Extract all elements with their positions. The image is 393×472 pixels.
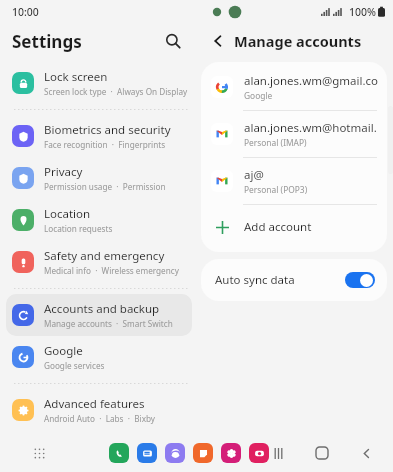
button[interactable]: Search xyxy=(160,28,186,54)
staticText: Manage accounts · Smart Switch xyxy=(44,318,173,329)
staticText: Lock screen xyxy=(44,69,108,85)
staticText: alan.jones.wm@hotmail.com xyxy=(244,120,379,136)
button[interactable]: alan.jones.wm@hotmail.com xyxy=(201,111,387,157)
button[interactable]: Safety and emergency xyxy=(6,241,192,283)
staticText: Screen lock type · Always On Display xyxy=(44,86,188,97)
staticText: Manage accounts xyxy=(234,31,362,51)
staticText: 100% xyxy=(349,5,376,19)
staticText: Add account xyxy=(244,219,312,235)
button[interactable]: notes xyxy=(193,443,213,463)
staticText: Location xyxy=(44,206,91,222)
button[interactable]: Location xyxy=(6,199,192,241)
staticText: Settings xyxy=(12,30,82,53)
staticText: Face recognition · Fingerprints xyxy=(44,139,166,150)
button[interactable]: Apps xyxy=(28,442,50,464)
staticText: Android Auto · Labs · Bixby Routines xyxy=(44,413,188,424)
staticText: Google services xyxy=(44,360,105,371)
button[interactable]: messages xyxy=(137,443,157,463)
staticText: Safety and emergency xyxy=(44,248,165,264)
staticText: Privacy xyxy=(44,164,83,180)
button[interactable]: internet xyxy=(165,443,185,463)
staticText: Permission usage · Permission manager xyxy=(44,181,188,192)
staticText: Personal (POP3) xyxy=(244,184,308,195)
staticText: aj@ xyxy=(244,167,264,183)
button[interactable]: Biometrics and security xyxy=(6,115,192,157)
staticText: Google xyxy=(44,343,83,359)
button[interactable]: Recents xyxy=(267,442,289,464)
button[interactable]: Accounts and backup xyxy=(6,294,192,336)
staticText: Accounts and backup xyxy=(44,301,160,317)
staticText: Location requests xyxy=(44,223,113,234)
staticText: Google xyxy=(244,90,273,101)
button[interactable]: flower xyxy=(221,443,241,463)
button[interactable]: Home xyxy=(311,442,333,464)
staticText: Medical info · Wireless emergency alerts xyxy=(44,265,188,276)
button[interactable]: camera xyxy=(249,443,269,463)
staticText: Auto sync data xyxy=(215,272,345,288)
staticText: Personal (IMAP) xyxy=(244,137,307,148)
button[interactable]: Advanced features xyxy=(6,389,192,431)
staticText: Biometrics and security xyxy=(44,122,171,138)
button[interactable]: Back xyxy=(355,442,377,464)
button[interactable]: alan.jones.wm@gmail.com xyxy=(201,64,387,110)
button[interactable]: phone xyxy=(109,443,129,463)
button[interactable]: aj@ xyxy=(201,158,387,204)
staticText: 10:00 xyxy=(12,5,39,19)
staticText: alan.jones.wm@gmail.com xyxy=(244,73,379,89)
button[interactable]: Auto sync data xyxy=(201,259,387,301)
button[interactable]: Google xyxy=(6,336,192,378)
button[interactable]: Privacy xyxy=(6,157,192,199)
button[interactable]: Add account xyxy=(201,205,387,250)
staticText: Advanced features xyxy=(44,396,145,412)
button[interactable]: Lock screen xyxy=(6,62,192,104)
button[interactable]: Back xyxy=(206,29,230,53)
